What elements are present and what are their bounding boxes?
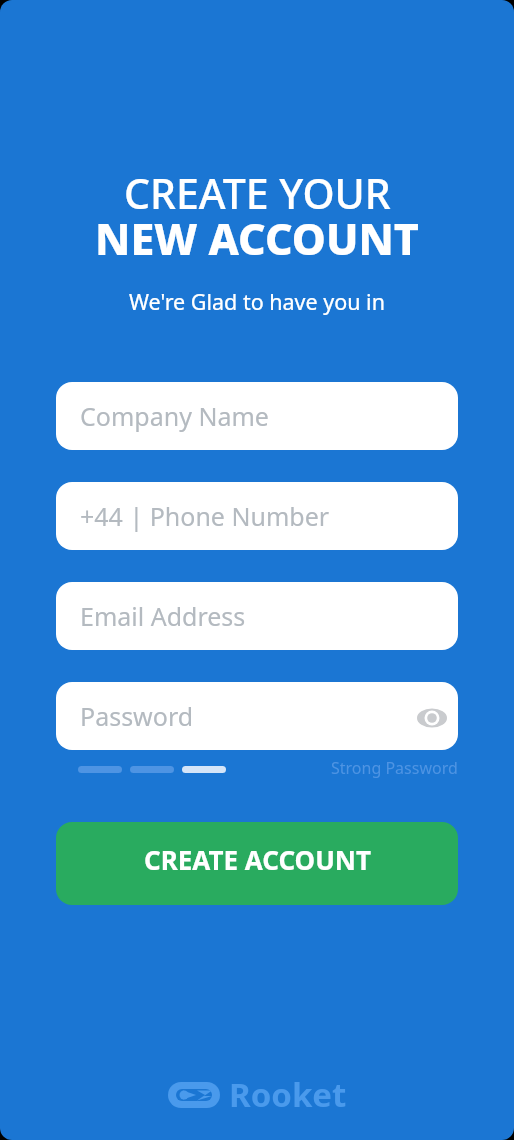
button[interactable]: +44 | Phone Number [56,482,458,550]
button[interactable]: Email Address [56,582,458,650]
staticText: Email Address [80,599,246,633]
staticText: +44 | Phone Number [80,499,330,533]
staticText: We're Glad to have you in [129,287,385,316]
staticText: Company Name [80,399,269,433]
button[interactable]: Password [56,682,458,750]
button[interactable]: Rooket [168,1072,347,1117]
staticText: Strong Password [331,757,458,779]
staticText: CREATE ACCOUNT [144,842,371,877]
staticText: CREATE YOUR [124,165,391,221]
staticText: NEW ACCOUNT [95,209,419,268]
staticText: Rooket [229,1072,347,1117]
staticText: Password [80,699,194,733]
button[interactable]: CREATE ACCOUNT [56,822,458,905]
button[interactable]: Company Name [56,382,458,450]
